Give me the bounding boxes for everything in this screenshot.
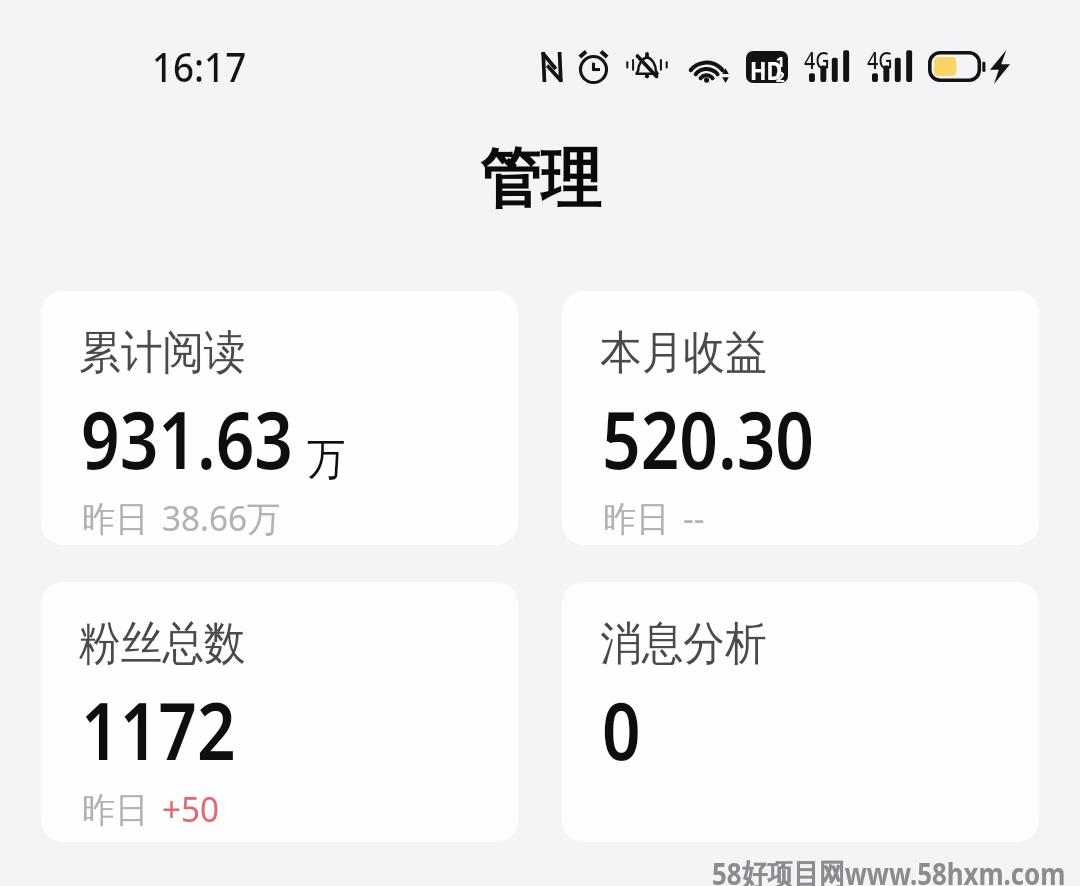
staticText: +50 (162, 785, 220, 833)
staticText: 消息分析 (600, 615, 766, 673)
button[interactable]: 累计阅读 (41, 291, 518, 545)
staticText: 38.66万 (162, 494, 281, 542)
staticText: 昨日 (603, 494, 679, 542)
staticText: 粉丝总数 (79, 615, 245, 673)
staticText: 管理 (480, 138, 601, 220)
other: Mobile signal (866, 48, 912, 82)
staticText: 4G (867, 44, 893, 75)
staticText: 2 (776, 66, 785, 83)
other: NFC (541, 52, 563, 82)
staticText: 昨日 (82, 785, 158, 833)
staticText: 4G (804, 44, 830, 75)
staticText: 万 (307, 432, 346, 487)
other: Battery (928, 51, 987, 82)
other: Mobile signal (803, 48, 849, 82)
staticText: 昨日 (82, 494, 158, 542)
button[interactable]: 本月收益 (562, 291, 1039, 545)
staticText: 本月收益 (600, 324, 766, 382)
other: HD voice (746, 51, 788, 83)
staticText: 931.63 (81, 383, 293, 492)
other: Alarm (578, 50, 609, 82)
staticText: 累计阅读 (79, 324, 245, 382)
staticText: 16:17 (152, 39, 247, 93)
other: Wi-Fi (689, 51, 733, 83)
staticText: 0 (602, 674, 641, 783)
staticText: 1 (776, 51, 785, 71)
staticText: 520.30 (602, 383, 814, 492)
staticText: -- (683, 494, 705, 542)
other: Charging (990, 50, 1010, 84)
other: Silent mode (623, 50, 671, 83)
staticText: HD (750, 53, 783, 83)
button[interactable]: 消息分析 (562, 582, 1039, 842)
button[interactable]: 粉丝总数 (41, 582, 518, 842)
staticText: 58好项目网www.58hxm.com (712, 853, 1065, 886)
staticText: 1172 (81, 674, 236, 783)
